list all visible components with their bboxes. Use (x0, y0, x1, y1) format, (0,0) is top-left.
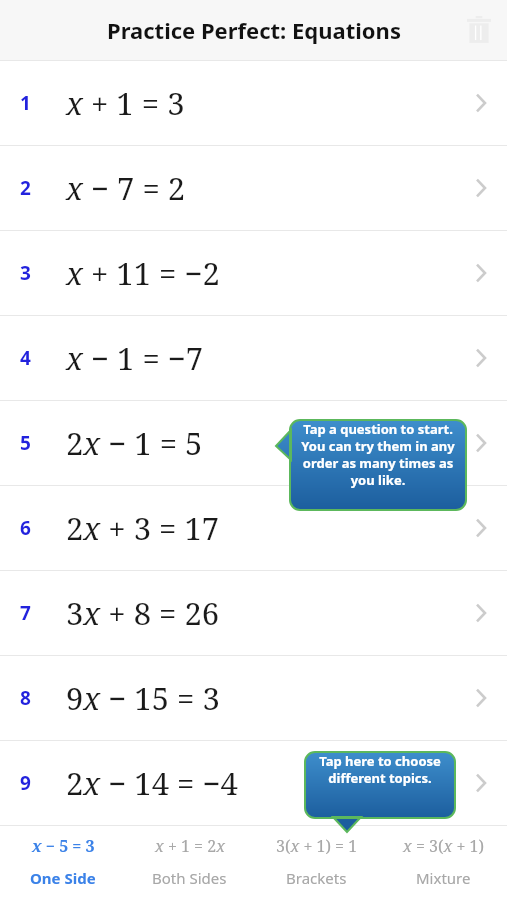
staticText: x + 11 = −2 (66, 252, 220, 294)
staticText: One Side (30, 868, 96, 888)
staticText: 9 (20, 770, 31, 796)
staticText: 5 (20, 430, 31, 456)
button[interactable]: x = 3(x + 1) (380, 827, 507, 900)
staticText: 2x − 14 = −4 (66, 762, 238, 804)
button[interactable]: x − 5 = 3 (0, 827, 126, 900)
staticText: Mixture (416, 868, 471, 888)
staticText: 3(x + 1) = 1 (276, 835, 358, 857)
button[interactable]: 2 (0, 146, 507, 230)
staticText: x − 7 = 2 (66, 167, 186, 209)
staticText: Both Sides (152, 868, 227, 888)
staticText: x = 3(x + 1) (403, 835, 484, 857)
staticText: Tap a question to start. You can try the… (298, 420, 458, 510)
staticText: x + 1 = 2x (155, 835, 225, 857)
staticText: 4 (20, 345, 31, 371)
staticText: 3 (20, 260, 31, 286)
staticText: 2x + 3 = 17 (66, 507, 220, 549)
staticText: x + 1 = 3 (66, 82, 185, 124)
staticText: Practice Perfect: Equations (107, 15, 401, 45)
staticText: x − 5 = 3 (32, 835, 95, 857)
staticText: 2 (20, 175, 31, 201)
staticText: 1 (20, 90, 31, 116)
staticText: 3x + 8 = 26 (66, 592, 220, 634)
button[interactable]: x + 1 = 2x (126, 827, 253, 900)
button[interactable]: 8 (0, 656, 507, 740)
staticText: 2x − 1 = 5 (66, 422, 203, 464)
staticText: 7 (20, 600, 31, 626)
staticText: x − 1 = −7 (66, 337, 204, 379)
button[interactable]: 6 (0, 486, 507, 570)
button[interactable]: 3(x + 1) = 1 (253, 827, 380, 900)
button[interactable]: 3 (0, 231, 507, 315)
staticText: Brackets (286, 868, 347, 888)
staticText: Tap here to choose different topics. (313, 752, 447, 818)
staticText: 9x − 15 = 3 (66, 677, 220, 719)
button[interactable]: Delete progress (457, 8, 501, 52)
button[interactable]: 1 (0, 61, 507, 145)
button[interactable]: 5 (0, 401, 507, 485)
button[interactable]: 9 (0, 741, 507, 825)
staticText: 6 (20, 515, 31, 541)
staticText: 8 (20, 685, 31, 711)
button[interactable]: 4 (0, 316, 507, 400)
button[interactable]: 7 (0, 571, 507, 655)
